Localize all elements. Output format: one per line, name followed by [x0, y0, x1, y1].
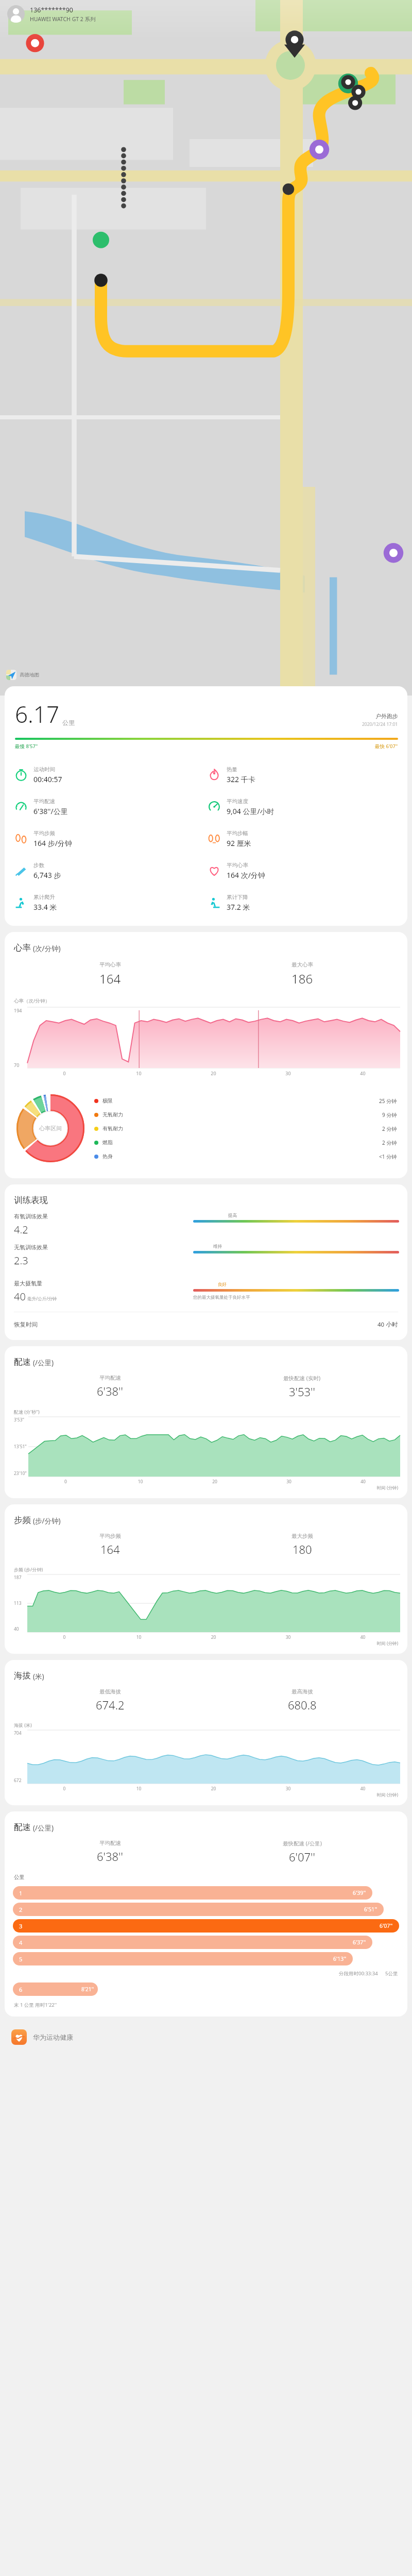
staticText: 2 分钟	[382, 1139, 397, 1146]
staticText: 海拔 (米)	[14, 1722, 32, 1728]
staticText: 40	[14, 1290, 26, 1303]
button[interactable]: 燃脂	[94, 1136, 400, 1149]
staticText: 恢复时间	[14, 1321, 38, 1328]
staticText: 164 次/分钟	[227, 870, 265, 880]
staticText: 极限	[102, 1097, 113, 1104]
button[interactable]: 累计爬升	[13, 887, 206, 919]
staticText: 公里	[62, 719, 75, 726]
staticText: 20	[176, 1634, 251, 1640]
staticText: 6'07''	[380, 1922, 393, 1929]
staticText: 0	[27, 1634, 101, 1640]
staticText: 194	[14, 1007, 22, 1013]
staticText: 无氧训练效果	[14, 1244, 48, 1251]
button[interactable]: 平均步频	[13, 823, 206, 855]
button[interactable]: 累计下降	[206, 887, 399, 919]
staticText: 180	[293, 1541, 312, 1557]
button[interactable]: 3	[13, 1919, 399, 1933]
staticText: 最大心率	[291, 961, 313, 968]
button[interactable]: 平均速度	[206, 791, 399, 823]
staticText: 热身	[102, 1153, 113, 1160]
staticText: 40	[325, 1634, 400, 1640]
staticText: 10	[103, 1479, 178, 1485]
button[interactable]: 有氧耐力	[94, 1122, 400, 1136]
button[interactable]: 6	[13, 1982, 399, 1996]
staticText: 6'13''	[333, 1955, 347, 1962]
staticText: 23'10"	[14, 1470, 27, 1477]
button[interactable]: 平均配速	[13, 791, 206, 823]
button[interactable]: 4	[13, 1936, 399, 1949]
staticText: 配速	[14, 1822, 31, 1833]
staticText: (次/分钟)	[33, 944, 61, 953]
staticText: (/公里)	[33, 1358, 54, 1367]
staticText: 配速	[14, 1357, 31, 1367]
staticText: 674.2	[96, 1697, 125, 1713]
staticText: 3'53"	[14, 1417, 24, 1423]
staticText: 时间 (分钟)	[5, 1792, 398, 1798]
staticText: 37.2 米	[227, 902, 250, 912]
staticText: 0	[28, 1479, 103, 1485]
staticText: (米)	[33, 1672, 44, 1681]
staticText: <1 分钟	[379, 1153, 397, 1160]
staticText: 6'37''	[353, 1939, 366, 1946]
staticText: 平均心率	[99, 961, 121, 968]
button[interactable]: 华为运动健康	[11, 2025, 401, 2049]
staticText: 164 步/分钟	[33, 838, 72, 848]
staticText: 704	[14, 1730, 22, 1736]
button[interactable]: 2	[13, 1903, 399, 1916]
staticText: 训练表现	[14, 1195, 48, 1206]
staticText: 40	[14, 1626, 19, 1632]
staticText: 步频	[14, 1515, 31, 1526]
staticText: 平均速度	[227, 798, 248, 805]
staticText: 最高海拔	[291, 1688, 313, 1695]
staticText: 10	[101, 1786, 176, 1792]
staticText: 平均心率	[227, 862, 248, 869]
staticText: 2020/12/24 17:01	[362, 721, 398, 727]
staticText: 2 分钟	[382, 1125, 397, 1132]
staticText: 运动时间	[33, 766, 55, 773]
staticText: 维持	[213, 1244, 222, 1249]
button[interactable]: 热量	[206, 759, 399, 791]
staticText: 有氧耐力	[102, 1125, 123, 1132]
button[interactable]: 无氧耐力	[94, 1108, 400, 1122]
button[interactable]: 运动时间	[13, 759, 206, 791]
staticText: 20	[176, 1786, 251, 1792]
button[interactable]: 恢复时间	[14, 1312, 398, 1337]
staticText: 186	[291, 970, 313, 987]
staticText: HUAWEI WATCH GT 2 系列	[30, 15, 96, 23]
staticText: 2	[19, 1906, 23, 1913]
staticText: 30	[252, 1479, 326, 1485]
staticText: 平均配速	[99, 1375, 121, 1381]
staticText: 海拔	[14, 1670, 31, 1681]
staticText: 平均步频	[33, 830, 55, 837]
button[interactable]: 步数	[13, 855, 206, 887]
staticText: 有氧训练效果	[14, 1213, 48, 1220]
staticText: 0	[27, 1786, 101, 1792]
button[interactable]: 平均步幅	[206, 823, 399, 855]
staticText: 164	[100, 1541, 120, 1557]
button[interactable]: 平均心率	[206, 855, 399, 887]
staticText: 时间 (分钟)	[5, 1485, 398, 1491]
staticText: 9 分钟	[382, 1111, 397, 1118]
staticText: 113	[14, 1600, 22, 1606]
staticText: 20	[176, 1070, 251, 1076]
staticText: 4.2	[14, 1223, 28, 1236]
button[interactable]: 1	[13, 1886, 399, 1900]
staticText: 136*******90	[30, 6, 73, 14]
button[interactable]: 极限	[94, 1094, 400, 1108]
staticText: 6'51''	[364, 1906, 377, 1913]
staticText: 良好	[218, 1282, 227, 1287]
staticText: 92 厘米	[227, 838, 251, 848]
staticText: 末 1 公里 用时1'22''	[14, 2002, 57, 2008]
button[interactable]: 热身	[94, 1149, 400, 1163]
staticText: 心率	[14, 942, 31, 953]
staticText: 累计爬升	[33, 894, 55, 901]
staticText: 2.3	[14, 1253, 28, 1267]
staticText: 30	[251, 1634, 325, 1640]
staticText: 您的最大摄氧量处于良好水平	[193, 1295, 250, 1300]
staticText: 累计下降	[227, 894, 248, 901]
staticText: 最快 6'07''	[375, 743, 398, 750]
staticText: (/公里)	[33, 1823, 54, 1833]
staticText: 672	[14, 1777, 22, 1784]
staticText: 33.4 米	[33, 902, 57, 912]
button[interactable]: 5	[13, 1952, 399, 1965]
